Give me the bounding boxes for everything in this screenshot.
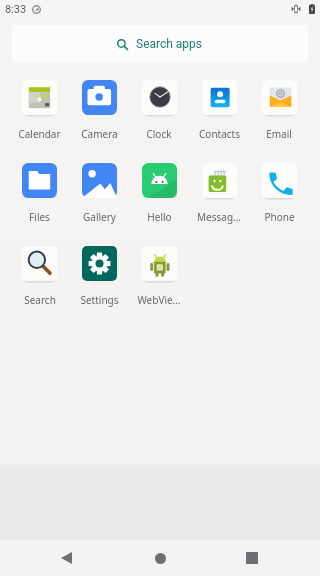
button[interactable]: Email <box>249 72 309 155</box>
button[interactable]: Files <box>10 155 69 238</box>
staticText: Gallery <box>83 210 116 224</box>
staticText: Phone <box>264 210 295 224</box>
staticText: Search apps <box>136 37 203 51</box>
staticText: Settings <box>80 293 119 307</box>
staticText: Hello <box>147 210 172 224</box>
button[interactable]: Settings <box>69 238 129 321</box>
button[interactable]: Home <box>134 540 186 576</box>
staticText: 8:33 <box>5 3 27 16</box>
staticText: Contacts <box>199 127 240 141</box>
button[interactable]: Recent apps <box>226 540 278 576</box>
staticText: Email <box>266 127 292 141</box>
button[interactable]: Camera <box>69 72 129 155</box>
staticText: Camera <box>81 127 118 141</box>
staticText: Calendar <box>18 127 61 141</box>
button[interactable]: WebVie… <box>129 238 189 321</box>
staticText: Files <box>29 210 50 224</box>
staticText: Clock <box>146 127 172 141</box>
button[interactable]: Search <box>10 238 69 321</box>
staticText: Messag… <box>197 210 241 224</box>
button[interactable]: Phone <box>249 155 309 238</box>
button[interactable]: Clock <box>129 72 189 155</box>
button[interactable]: Hello <box>129 155 189 238</box>
button[interactable]: Calendar <box>10 72 69 155</box>
button[interactable]: Contacts <box>189 72 249 155</box>
button[interactable]: Back <box>40 540 92 576</box>
staticText: Search <box>24 293 56 307</box>
button[interactable]: Search apps <box>12 25 308 62</box>
staticText: WebVie… <box>137 293 181 307</box>
button[interactable]: Gallery <box>69 155 129 238</box>
button[interactable]: Messag… <box>189 155 249 238</box>
